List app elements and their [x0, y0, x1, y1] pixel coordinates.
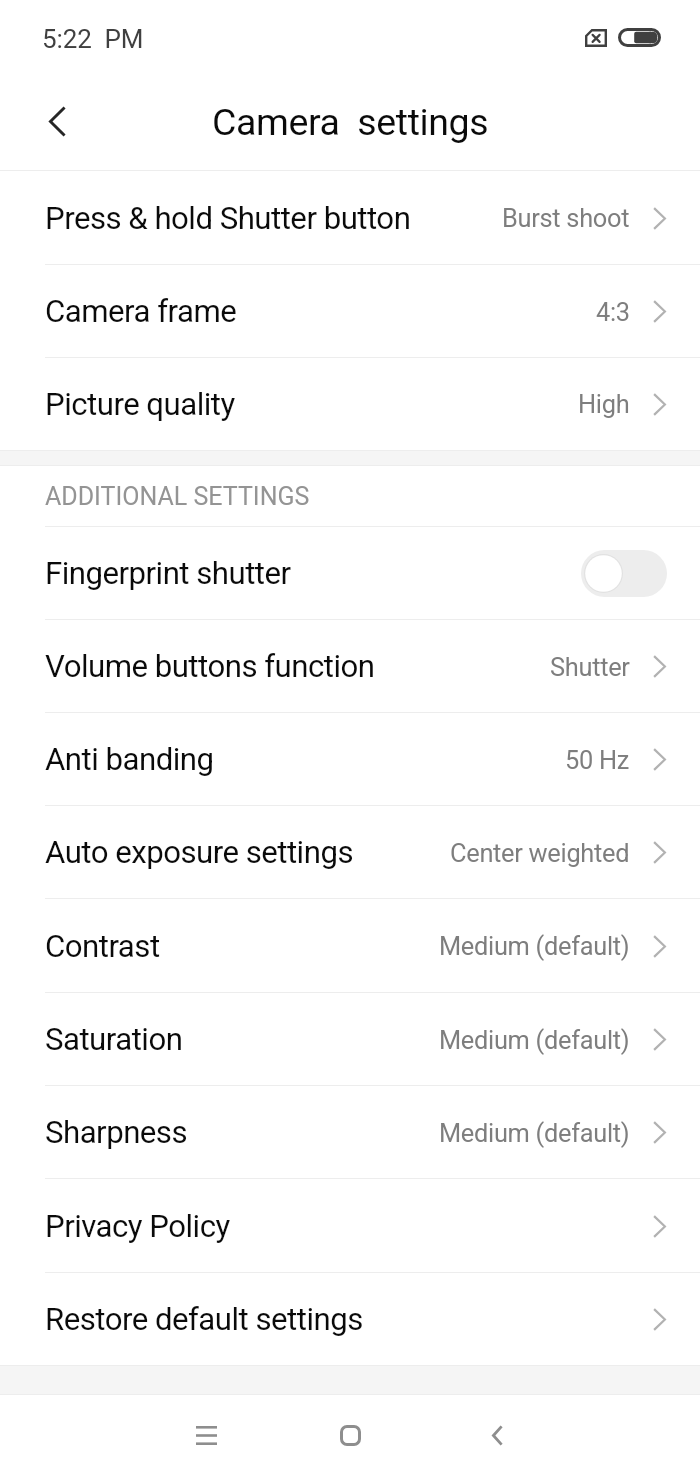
staticText: Press & hold Shutter button: [45, 200, 411, 237]
button[interactable]: Home: [300, 1395, 400, 1477]
button[interactable]: Anti banding: [0, 713, 700, 806]
button[interactable]: Contrast: [0, 899, 700, 993]
staticText: Picture quality: [45, 386, 235, 423]
staticText: Contrast: [45, 928, 160, 965]
button[interactable]: Picture quality: [0, 358, 700, 450]
button[interactable]: Fingerprint shutter: [0, 527, 700, 620]
staticText: High: [578, 389, 630, 419]
staticText: Shutter: [550, 652, 630, 682]
staticText: Auto exposure settings: [45, 834, 353, 871]
button[interactable]: Sharpness: [0, 1086, 700, 1179]
button[interactable]: Restore default settings: [0, 1273, 700, 1365]
staticText: Medium (default): [439, 1025, 630, 1055]
staticText: 50 Hz: [565, 745, 630, 775]
staticText: Medium (default): [439, 1118, 630, 1148]
staticText: Restore default settings: [45, 1301, 363, 1338]
button[interactable]: Back: [447, 1395, 547, 1477]
staticText: Anti banding: [45, 741, 214, 778]
staticText: Camera settings: [212, 100, 489, 144]
staticText: 4:3: [596, 297, 630, 327]
staticText: Fingerprint shutter: [45, 555, 291, 592]
staticText: ADDITIONAL SETTINGS: [45, 482, 310, 511]
staticText: Burst shoot: [502, 203, 630, 233]
button[interactable]: Fingerprint shutter toggle: [581, 550, 667, 597]
button[interactable]: Auto exposure settings: [0, 806, 700, 899]
button[interactable]: Saturation: [0, 993, 700, 1086]
button[interactable]: Privacy Policy: [0, 1179, 700, 1273]
button[interactable]: Camera frame: [0, 265, 700, 358]
staticText: Camera frame: [45, 293, 237, 330]
staticText: Medium (default): [439, 931, 630, 961]
button[interactable]: Volume buttons function: [0, 620, 700, 713]
staticText: Saturation: [45, 1021, 183, 1058]
staticText: 5:22 PM: [42, 24, 144, 54]
staticText: Volume buttons function: [45, 648, 375, 685]
staticText: Center weighted: [450, 838, 630, 868]
button[interactable]: Recents: [156, 1395, 256, 1477]
staticText: Sharpness: [45, 1114, 188, 1151]
button[interactable]: Press & hold Shutter button: [0, 171, 700, 265]
button[interactable]: Back: [0, 78, 114, 171]
staticText: Privacy Policy: [45, 1208, 230, 1245]
